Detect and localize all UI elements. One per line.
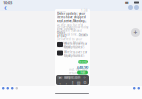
- staticText: aA: [58, 76, 61, 79]
- staticText: Wireless over ear headphones: [64, 42, 87, 49]
- staticText: £48.90: [77, 64, 88, 70]
- button[interactable]: App: [137, 87, 140, 89]
- button[interactable]: Toolbar item: [76, 80, 82, 84]
- staticText: Delivery window today between 9am and 1p…: [57, 25, 88, 36]
- staticText: 1:38: [81, 9, 88, 12]
- staticText: ↥: [71, 80, 74, 84]
- staticText: Order #1042: [57, 31, 67, 38]
- staticText: Track your delivery live in the app for …: [57, 20, 87, 31]
- button[interactable]: Back: [2, 4, 9, 11]
- button[interactable]: Details: [78, 33, 88, 37]
- button[interactable]: Settings: [134, 5, 139, 10]
- staticText: ›: [66, 80, 67, 84]
- staticText: Order update: your items have shipped an…: [57, 12, 86, 23]
- button[interactable]: App: [6, 87, 9, 89]
- button[interactable]: Toolbar item: [57, 80, 63, 84]
- button[interactable]: Account: [128, 5, 133, 10]
- button[interactable]: Toolbar item: [82, 80, 88, 84]
- staticText: Qty 1 · £24.45: [64, 54, 85, 57]
- staticText: incl. tax · free returns: [69, 68, 88, 75]
- staticText: ▮▮▮: [125, 1, 128, 4]
- button[interactable]: Toolbar item: [63, 80, 69, 84]
- button[interactable]: Reorder: [78, 60, 88, 63]
- staticText: ‹: [60, 80, 61, 84]
- button[interactable]: App: [15, 87, 18, 89]
- staticText: Wireless over ear headphones: [64, 50, 87, 58]
- staticText: ‹: [4, 2, 7, 13]
- button[interactable]: App: [133, 87, 135, 89]
- staticText: ⧉: [83, 80, 86, 84]
- staticText: ⟳: [83, 76, 85, 79]
- staticText: ▤: [77, 80, 81, 84]
- button[interactable]: Toolbar item: [69, 80, 76, 84]
- staticText: ———: [57, 9, 66, 12]
- staticText: Delivered to your address on Monday morn…: [57, 37, 83, 48]
- button[interactable]: Track: [77, 70, 88, 74]
- button[interactable]: App: [2, 87, 4, 89]
- staticText: Reorder: [78, 60, 88, 63]
- staticText: Track: [80, 71, 85, 74]
- staticText: +: [133, 28, 137, 37]
- button[interactable]: New message: [131, 28, 140, 37]
- staticText: Details: [78, 33, 87, 37]
- staticText: 10:03: [3, 0, 12, 5]
- staticText: Qty 1 · £24.45: [64, 45, 85, 49]
- staticText: example.com: [64, 76, 80, 79]
- button[interactable]: App: [11, 87, 13, 89]
